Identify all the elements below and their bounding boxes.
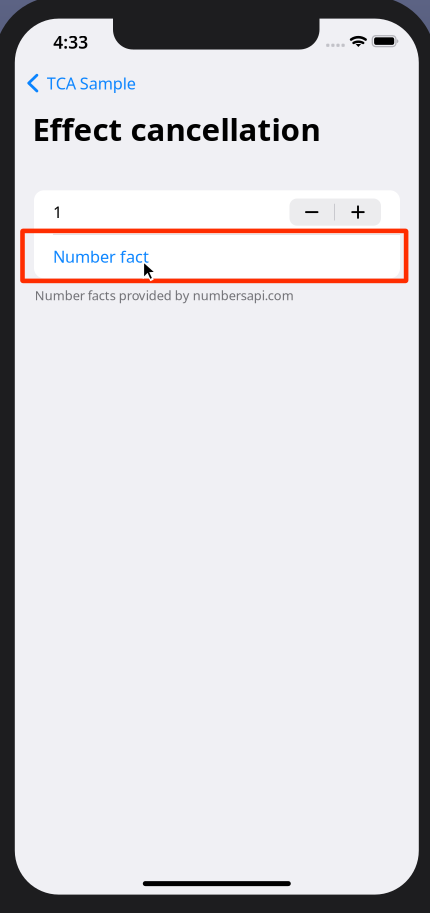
button[interactable]: Back to TCA Sample — [15, 66, 175, 100]
staticText: Number fact — [53, 245, 149, 268]
staticText: TCA Sample — [47, 72, 136, 94]
button[interactable]: Number fact — [34, 235, 400, 278]
staticText: Effect cancellation — [33, 108, 321, 150]
staticText: Number facts provided by numbersapi.com — [35, 287, 294, 304]
staticText: 4:33 — [53, 30, 88, 54]
staticText: 1 — [53, 201, 62, 223]
button[interactable]: Stepper, decrement or increment — [289, 198, 381, 226]
